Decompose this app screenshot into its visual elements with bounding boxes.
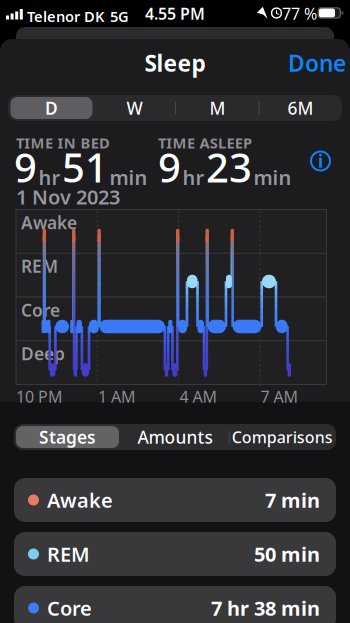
staticText: min — [253, 164, 291, 191]
staticText: M — [209, 96, 225, 119]
staticText: Comparisons — [232, 426, 333, 448]
staticText: hr — [182, 164, 204, 191]
button[interactable]: 6M — [260, 96, 340, 120]
staticText: 7 hr 38 min — [211, 595, 320, 621]
staticText: REM — [21, 254, 58, 277]
staticText: Core — [21, 298, 60, 321]
staticText: Core — [47, 595, 92, 621]
staticText: 4 AM — [179, 386, 217, 407]
staticText: Deep — [21, 342, 65, 365]
staticText: 77 % — [282, 3, 317, 24]
staticText: 7 min — [265, 487, 320, 513]
staticText: i — [318, 149, 323, 172]
staticText: 4.55 PM — [145, 3, 205, 24]
staticText: 51 — [62, 140, 108, 194]
staticText: REM — [47, 541, 90, 567]
button[interactable]: i — [310, 150, 331, 171]
staticText: 6M — [287, 96, 313, 119]
staticText: 1 Nov 2023 — [16, 183, 120, 210]
staticText: Awake — [21, 211, 77, 234]
staticText: Amounts — [137, 425, 212, 448]
staticText: Stages — [39, 425, 96, 448]
button[interactable]: W — [94, 96, 174, 120]
staticText: 7 AM — [260, 386, 298, 407]
button[interactable]: Stages — [16, 426, 119, 448]
staticText: W — [126, 96, 142, 119]
staticText: Telenor DK — [27, 6, 104, 26]
staticText: TIME ASLEEP — [158, 133, 252, 152]
staticText: 1 AM — [98, 386, 136, 407]
staticText: TIME IN BED — [16, 133, 110, 152]
staticText: 5G — [110, 6, 129, 26]
button[interactable]: Amounts — [123, 425, 227, 449]
staticText: Done — [288, 48, 346, 78]
button[interactable]: Done — [288, 48, 346, 78]
staticText: min — [109, 164, 147, 191]
staticText: hr — [38, 164, 60, 191]
staticText: 9 — [14, 140, 37, 194]
staticText: 10 PM — [16, 386, 63, 407]
button[interactable]: M — [177, 96, 257, 120]
staticText: 9 — [158, 140, 181, 194]
staticText: 50 min — [254, 541, 320, 567]
staticText: Sleep — [144, 48, 205, 78]
staticText: 23 — [206, 140, 252, 194]
staticText: D — [45, 96, 58, 119]
button[interactable]: Comparisons — [227, 425, 337, 449]
button[interactable]: D — [10, 97, 92, 119]
staticText: Awake — [47, 487, 113, 513]
